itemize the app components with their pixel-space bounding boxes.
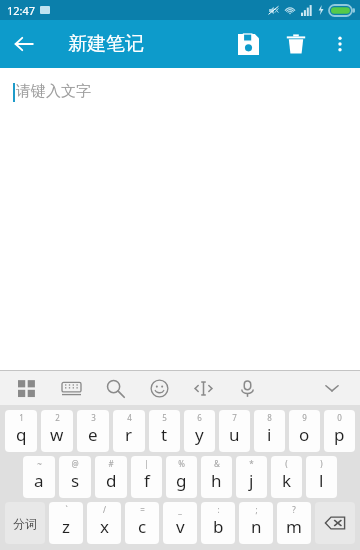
- staticText: e: [88, 423, 98, 446]
- staticText: s: [71, 469, 80, 492]
- button[interactable]: 9: [289, 410, 320, 452]
- staticText: x: [100, 515, 109, 538]
- staticText: (: [285, 458, 288, 469]
- staticText: a: [34, 469, 44, 492]
- staticText: ?: [292, 504, 296, 515]
- button[interactable]: &: [201, 456, 232, 498]
- staticText: 12:47: [7, 3, 36, 18]
- staticText: @: [71, 458, 79, 469]
- button[interactable]: %: [166, 456, 197, 498]
- staticText: /: [103, 504, 106, 515]
- button[interactable]: 5: [149, 410, 180, 452]
- button[interactable]: =: [125, 502, 159, 544]
- button[interactable]: 1: [5, 410, 37, 452]
- staticText: h: [211, 469, 222, 492]
- staticText: ~: [37, 458, 42, 469]
- button[interactable]: `: [49, 502, 83, 544]
- button[interactable]: 4: [113, 410, 145, 452]
- button[interactable]: Voice input: [232, 371, 262, 405]
- button[interactable]: Hide keyboard: [312, 371, 352, 405]
- button[interactable]: Keyboard layout: [56, 371, 86, 405]
- staticText: *: [249, 458, 254, 469]
- staticText: #: [108, 458, 114, 469]
- staticText: r: [125, 423, 133, 446]
- staticText: %: [178, 458, 185, 469]
- button[interactable]: Backspace: [315, 502, 355, 544]
- button[interactable]: Symbols: [12, 371, 42, 405]
- staticText: b: [213, 515, 224, 538]
- button[interactable]: 2: [41, 410, 73, 452]
- staticText: d: [106, 469, 117, 492]
- staticText: o: [299, 423, 310, 446]
- button[interactable]: Save: [224, 20, 272, 68]
- button[interactable]: Delete: [272, 20, 320, 68]
- staticText: j: [249, 469, 254, 492]
- staticText: &: [214, 458, 220, 469]
- button[interactable]: _: [163, 502, 197, 544]
- button[interactable]: :: [201, 502, 235, 544]
- button[interactable]: Search: [100, 371, 130, 405]
- staticText: l: [319, 469, 324, 492]
- button[interactable]: 分词: [5, 502, 45, 544]
- button[interactable]: (: [271, 456, 302, 498]
- staticText: u: [229, 423, 240, 446]
- button[interactable]: ?: [277, 502, 311, 544]
- staticText: 4: [127, 412, 132, 423]
- button[interactable]: 0: [324, 410, 355, 452]
- button[interactable]: ~: [23, 456, 55, 498]
- staticText: 分词: [13, 516, 37, 531]
- staticText: z: [62, 515, 70, 538]
- staticText: 3: [91, 412, 96, 423]
- staticText: p: [334, 423, 345, 446]
- staticText: 5: [162, 412, 167, 423]
- staticText: 7: [232, 412, 237, 423]
- staticText: m: [286, 515, 302, 538]
- staticText: 9: [302, 412, 307, 423]
- staticText: w: [50, 423, 64, 446]
- staticText: 6: [197, 412, 202, 423]
- staticText: 0: [337, 412, 342, 423]
- button[interactable]: #: [95, 456, 127, 498]
- staticText: |: [144, 458, 149, 469]
- staticText: :: [217, 504, 220, 515]
- staticText: t: [161, 423, 168, 446]
- button[interactable]: Back: [0, 20, 48, 68]
- staticText: 1: [19, 412, 24, 423]
- button[interactable]: 7: [219, 410, 250, 452]
- staticText: i: [267, 423, 272, 446]
- staticText: v: [176, 515, 185, 538]
- button[interactable]: 3: [77, 410, 109, 452]
- staticText: k: [282, 469, 292, 492]
- staticText: q: [16, 423, 27, 446]
- button[interactable]: ;: [239, 502, 273, 544]
- button[interactable]: |: [131, 456, 162, 498]
- staticText: 2: [55, 412, 60, 423]
- staticText: =: [140, 504, 145, 515]
- staticText: `: [65, 504, 68, 515]
- button[interactable]: @: [59, 456, 91, 498]
- button[interactable]: 6: [184, 410, 215, 452]
- button[interactable]: 8: [254, 410, 285, 452]
- button[interactable]: ): [306, 456, 337, 498]
- staticText: 8: [267, 412, 272, 423]
- button[interactable]: More options: [320, 24, 360, 64]
- button[interactable]: *: [236, 456, 267, 498]
- staticText: g: [176, 469, 187, 492]
- staticText: _: [178, 504, 182, 515]
- staticText: ;: [255, 504, 258, 515]
- staticText: c: [138, 515, 147, 538]
- button[interactable]: Emoji: [144, 371, 174, 405]
- button[interactable]: Move cursor: [188, 371, 218, 405]
- staticText: f: [144, 469, 150, 492]
- staticText: n: [251, 515, 262, 538]
- button[interactable]: /: [87, 502, 121, 544]
- staticText: 请键入文字: [16, 82, 91, 101]
- staticText: ): [320, 458, 323, 469]
- staticText: y: [195, 423, 204, 446]
- staticText: 新建笔记: [68, 32, 144, 56]
